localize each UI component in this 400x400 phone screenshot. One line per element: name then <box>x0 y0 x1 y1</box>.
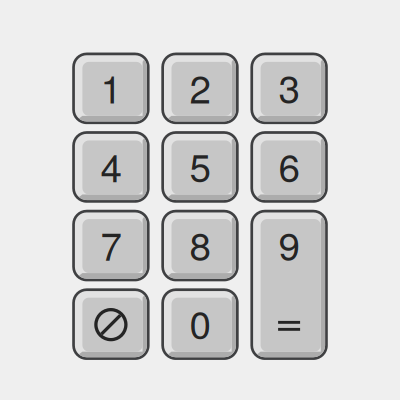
staticText: 6 <box>279 138 300 193</box>
button[interactable]: 0 <box>161 288 239 360</box>
staticText: 4 <box>100 138 121 193</box>
button[interactable]: 1 <box>72 53 150 124</box>
button[interactable]: Nine, equals <box>250 210 328 360</box>
staticText: 3 <box>279 59 300 115</box>
staticText: 0 <box>189 295 210 350</box>
staticText: 2 <box>189 59 210 115</box>
staticText: 1 <box>100 59 121 115</box>
staticText: 9 <box>279 216 300 272</box>
button[interactable]: 7 <box>72 210 150 281</box>
button[interactable]: 2 <box>161 53 239 124</box>
button[interactable]: 3 <box>250 53 328 124</box>
button[interactable]: 5 <box>161 131 239 203</box>
staticText: 5 <box>189 138 210 193</box>
button[interactable]: Clear <box>72 288 150 360</box>
staticText: 7 <box>100 216 121 272</box>
button[interactable]: 4 <box>72 131 150 203</box>
staticText: 8 <box>189 216 210 272</box>
button[interactable]: 8 <box>161 210 239 281</box>
button[interactable]: 6 <box>250 131 328 203</box>
